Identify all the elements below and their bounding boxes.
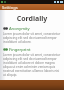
staticText: Lorem ipsum dolor sit amet, consectetur … xyxy=(3,32,61,44)
staticText: Anonymity xyxy=(9,26,30,31)
staticText: Lorem ipsum dolor sit amet, consectetur … xyxy=(3,53,61,77)
button[interactable]: Anonymity xyxy=(0,26,64,44)
button[interactable]: Fingerprint xyxy=(0,47,64,77)
staticText: Settings xyxy=(2,5,18,10)
staticText: Fingerprint xyxy=(9,47,31,52)
staticText: Cordially xyxy=(0,14,64,24)
